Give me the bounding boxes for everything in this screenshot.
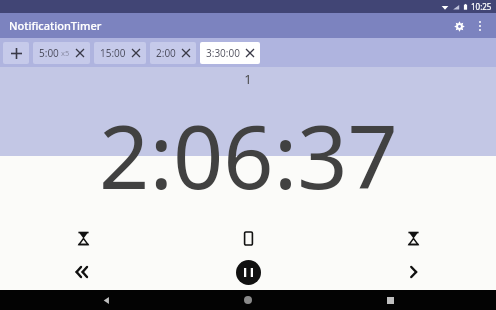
staticText: 2:06:37	[99, 95, 398, 215]
button[interactable]: Add timer	[3, 42, 29, 64]
button[interactable]: 5:00	[33, 42, 90, 64]
staticText: x5	[61, 48, 70, 58]
button[interactable]: Back	[96, 290, 116, 310]
button[interactable]: Next	[331, 254, 496, 290]
button[interactable]: More options	[470, 16, 490, 36]
staticText: 15:00	[100, 46, 126, 60]
staticText: 5:00	[39, 46, 59, 60]
button[interactable]: 15:00	[94, 42, 146, 64]
button[interactable]: Timer options	[0, 222, 166, 254]
button[interactable]: Pause	[166, 254, 331, 290]
staticText: NotificationTimer	[9, 18, 102, 33]
staticText: 3:30:00	[206, 46, 240, 60]
button[interactable]: Settings	[448, 15, 470, 37]
button[interactable]: 2:00	[150, 42, 196, 64]
staticText: 2:00	[156, 46, 176, 60]
button[interactable]: Timer options right	[331, 222, 496, 254]
button[interactable]: 3:30:00	[200, 42, 260, 64]
button[interactable]: Previous	[0, 254, 166, 290]
staticText: 10:25	[471, 1, 492, 12]
staticText: 1	[244, 70, 252, 88]
button[interactable]: Vibration	[166, 222, 331, 254]
button[interactable]: Home	[238, 290, 258, 310]
button[interactable]: Recents	[380, 290, 400, 310]
